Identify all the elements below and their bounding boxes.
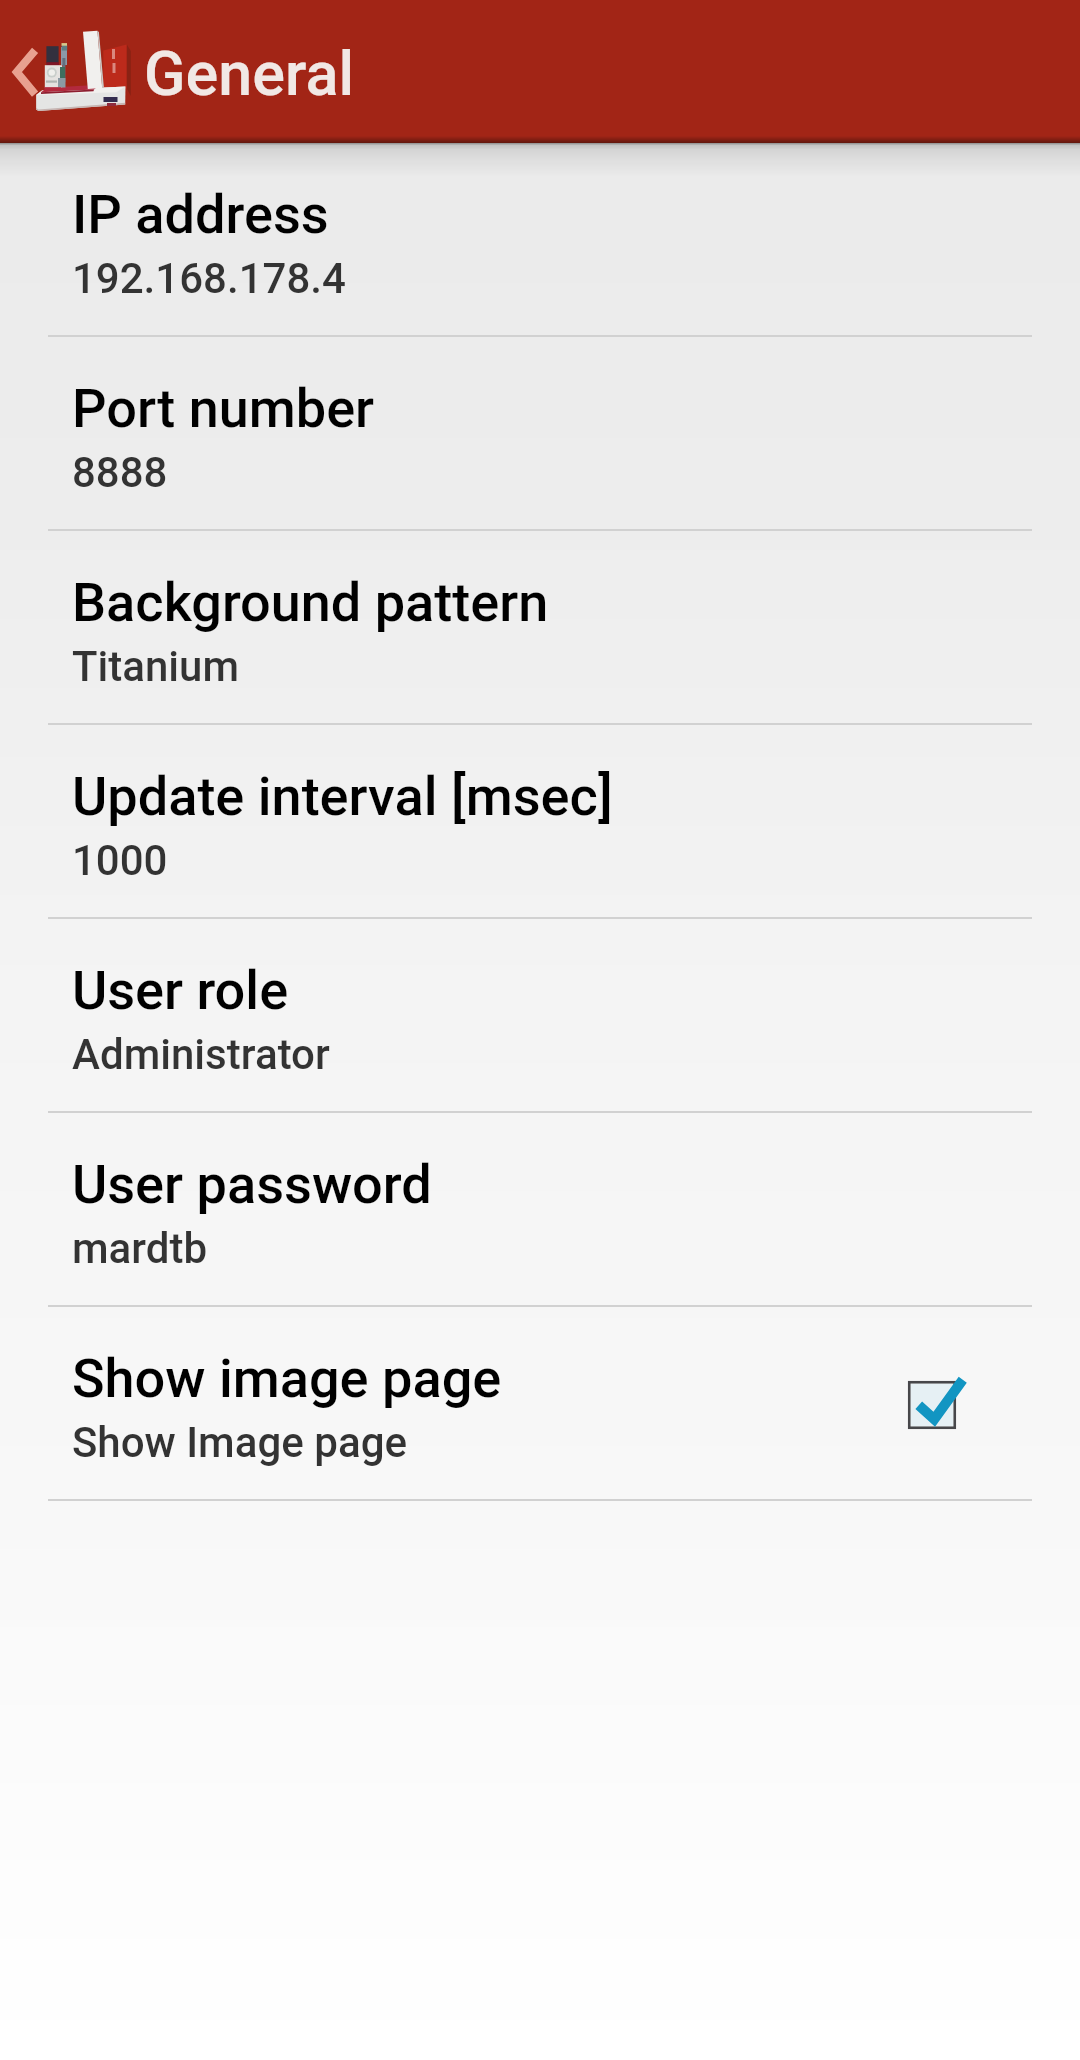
button[interactable]: Show image page [0,1307,1080,1499]
button[interactable]: Port number [0,337,1080,529]
staticText: Update interval [msec] [72,765,613,828]
button[interactable]: IP address [0,143,1080,335]
button[interactable]: Show image page checkbox [894,1355,990,1451]
staticText: 8888 [72,448,168,497]
staticText: Administrator [72,1030,330,1079]
button[interactable]: Background pattern [0,531,1080,723]
staticText: User role [72,959,289,1022]
staticText: 192.168.178.4 [72,254,346,303]
staticText: Background pattern [72,571,549,634]
staticText: mardtb [72,1224,208,1273]
button[interactable]: User role [0,919,1080,1111]
staticText: Show image page [72,1347,502,1410]
button[interactable]: User password [0,1113,1080,1305]
staticText: General [144,38,355,109]
staticText: Show Image page [72,1418,407,1467]
staticText: 1000 [72,836,168,885]
staticText: Titanium [72,642,239,691]
staticText: Port number [72,377,375,440]
button[interactable]: Navigate up [0,0,140,143]
staticText: User password [72,1153,432,1216]
staticText: IP address [72,183,329,246]
button[interactable]: Update interval [msec] [0,725,1080,917]
